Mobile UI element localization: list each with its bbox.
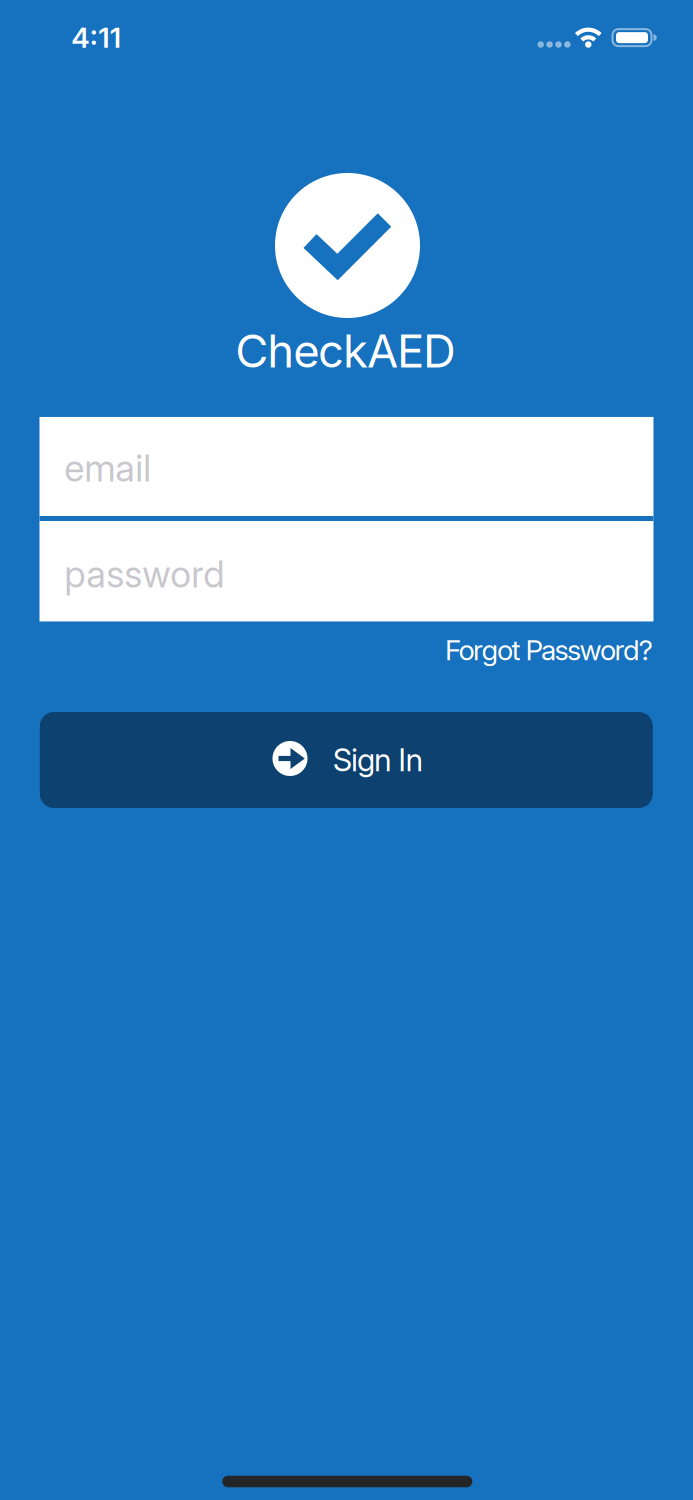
- staticText: 4:11: [71, 21, 121, 54]
- staticText: Forgot Password?: [445, 633, 652, 667]
- staticText: password: [64, 552, 224, 596]
- staticText: CheckAED: [235, 323, 456, 378]
- staticText: Sign In: [333, 741, 423, 779]
- staticText: email: [64, 446, 151, 490]
